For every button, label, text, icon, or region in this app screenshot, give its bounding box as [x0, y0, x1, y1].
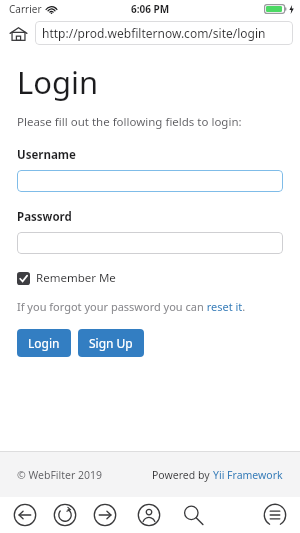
staticText: 6:06 PM: [131, 2, 170, 16]
button[interactable]: Account: [134, 500, 164, 530]
button[interactable]: Forward: [90, 500, 120, 530]
staticText: Yii Framework: [213, 468, 283, 482]
staticText: Password: [17, 209, 72, 225]
staticText: http://prod.webfilternow.com/site/login: [42, 25, 266, 41]
button[interactable]: Back: [10, 500, 40, 530]
button[interactable]: Reload: [50, 500, 80, 530]
button[interactable]: Password field: [17, 232, 283, 254]
staticText: Remember Me: [36, 270, 116, 286]
button[interactable]: Home: [7, 22, 29, 44]
button[interactable]: Username field: [17, 170, 283, 192]
button[interactable]: Search: [178, 500, 208, 530]
button[interactable]: Menu: [260, 500, 290, 530]
staticText: Carrier: [9, 2, 42, 16]
staticText: Powered by: [152, 468, 213, 482]
staticText: If you forgot your password you can rese…: [17, 299, 246, 314]
button[interactable]: Login: [17, 329, 71, 357]
staticText: Please fill out the following fields to …: [17, 114, 242, 130]
staticText: Login: [28, 335, 60, 351]
button[interactable]: Remember Me: [17, 270, 116, 286]
button[interactable]: Powered by: [152, 468, 283, 482]
staticText: Login: [17, 61, 99, 103]
staticText: Username: [17, 147, 76, 163]
button[interactable]: If you forgot your password you can rese…: [17, 299, 246, 314]
button[interactable]: http://prod.webfilternow.com/site/login: [35, 21, 293, 45]
staticText: Sign Up: [89, 335, 133, 351]
button[interactable]: Sign Up: [78, 329, 144, 357]
staticText: © WebFilter 2019: [17, 468, 103, 482]
